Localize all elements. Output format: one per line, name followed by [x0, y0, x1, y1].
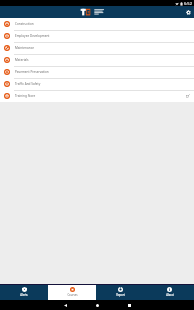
button[interactable]: About	[145, 285, 194, 300]
staticText: Training Store	[15, 94, 36, 98]
button[interactable]: Courses	[48, 285, 96, 300]
button[interactable]: Home	[81, 300, 113, 310]
button[interactable]: Back	[49, 300, 81, 310]
staticText: Pavement Preservation	[15, 70, 49, 74]
staticText: Materials	[15, 58, 29, 62]
button[interactable]: Report	[96, 285, 145, 300]
staticText: Alerts	[20, 293, 28, 297]
staticText: 6:52	[184, 1, 192, 6]
staticText: Maintenance	[15, 46, 34, 50]
button[interactable]: Alerts	[0, 285, 48, 300]
staticText: Courses	[67, 293, 78, 297]
button[interactable]: Construction	[0, 18, 194, 30]
button[interactable]: Traffic And Safety	[0, 78, 194, 90]
staticText: Report	[116, 293, 125, 297]
button[interactable]: Maintenance	[0, 42, 194, 54]
button[interactable]: Recents	[113, 300, 145, 310]
button[interactable]: Settings	[184, 8, 193, 17]
button[interactable]: Pavement Preservation	[0, 66, 194, 78]
staticText: About	[166, 293, 174, 297]
button[interactable]: Training Store	[0, 90, 194, 102]
staticText: Construction	[15, 22, 34, 26]
staticText: Employee Development	[15, 34, 50, 38]
button[interactable]: Materials	[0, 54, 194, 66]
button[interactable]: Employee Development	[0, 30, 194, 42]
staticText: Traffic And Safety	[15, 82, 41, 86]
